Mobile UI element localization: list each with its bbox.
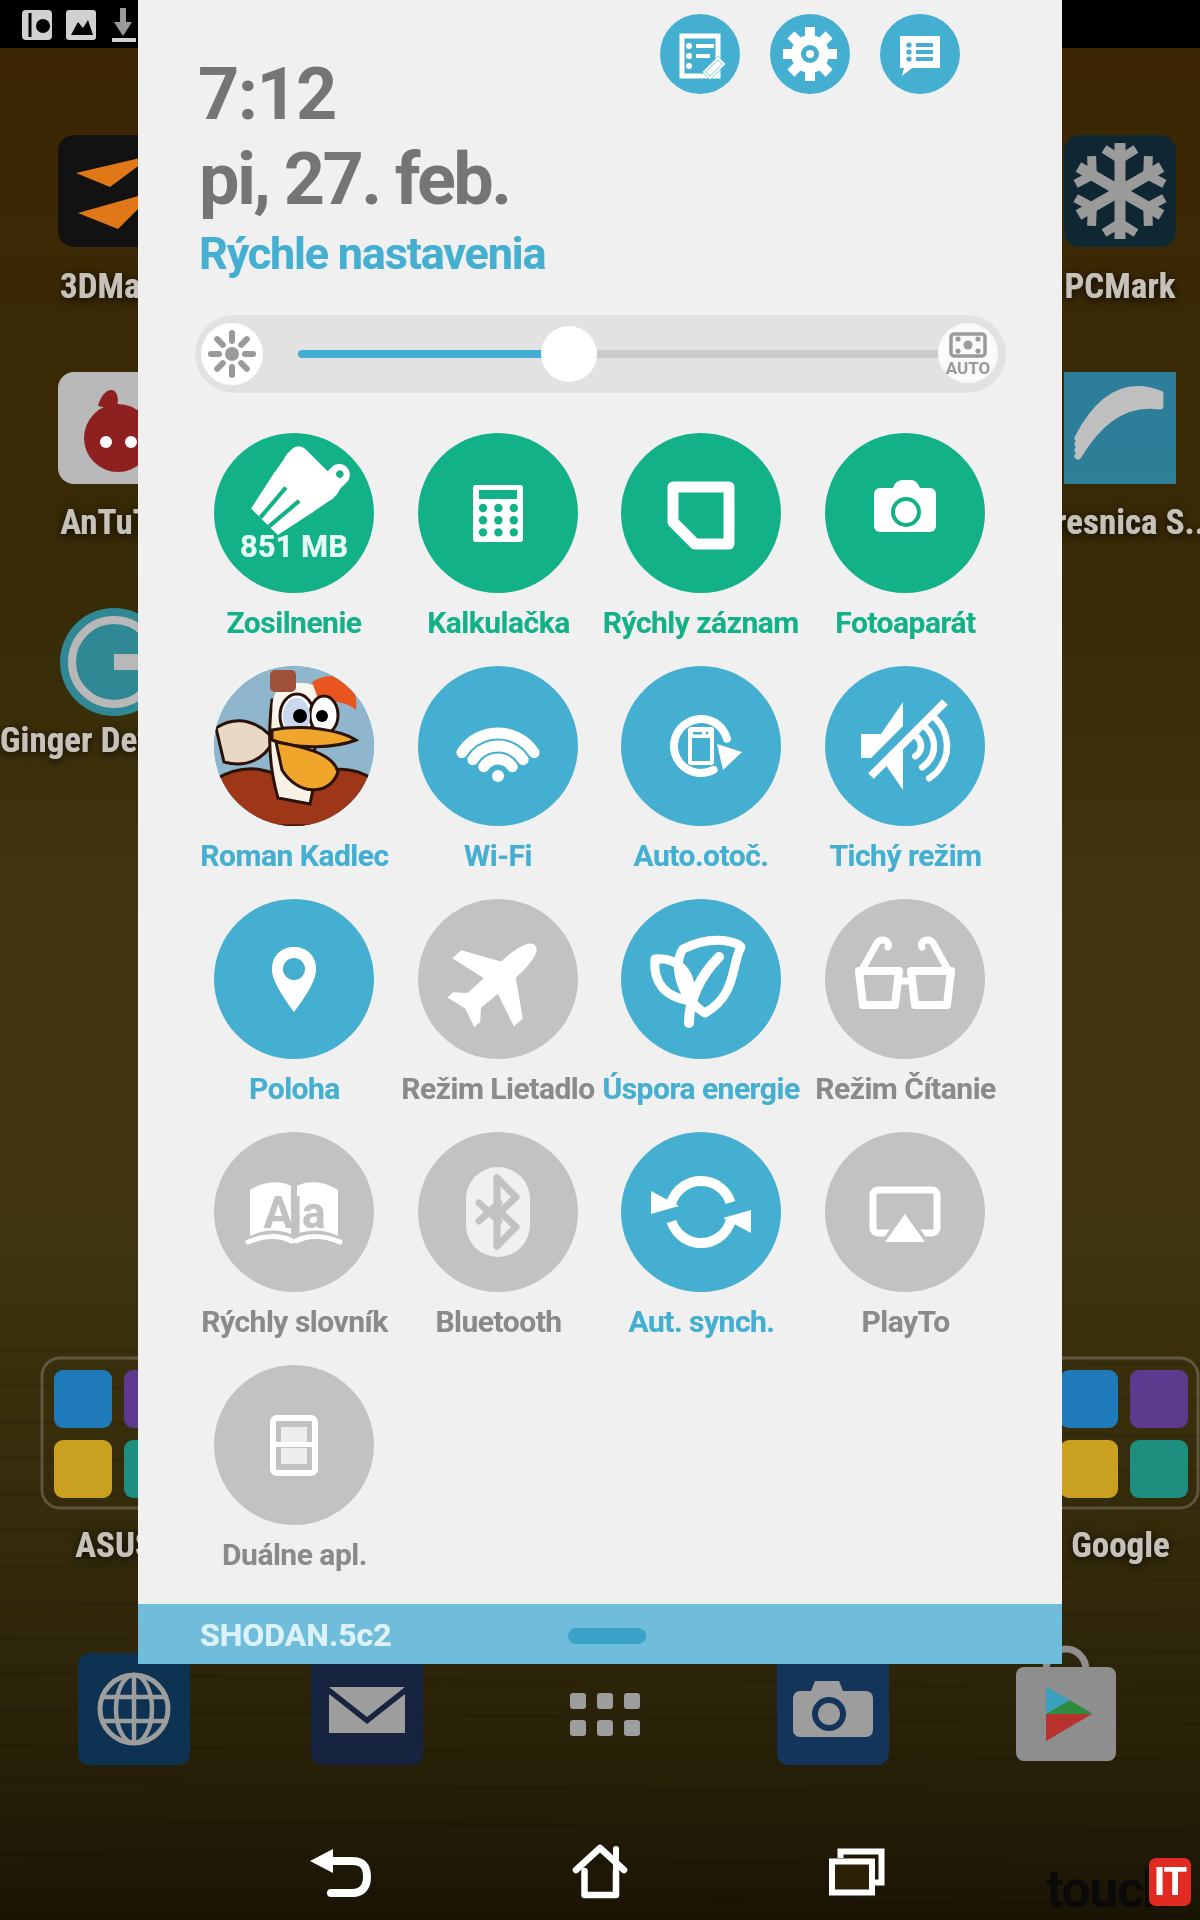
- staticText: Aut. synch.: [628, 1304, 775, 1339]
- staticText: Rýchly slovník: [201, 1304, 388, 1339]
- staticText: touch: [1046, 1859, 1171, 1920]
- button[interactable]: Recent apps: [826, 1845, 890, 1901]
- staticText: AUTO: [943, 358, 993, 378]
- staticText: Tichý režim: [829, 838, 982, 873]
- staticText: AnTuTu: [60, 502, 168, 543]
- button[interactable]: A|a: [193, 1128, 395, 1355]
- staticText: Bluetooth: [435, 1304, 562, 1339]
- button[interactable]: Rýchle nastavenia: [199, 227, 546, 280]
- button[interactable]: [397, 1128, 599, 1355]
- staticText: Rýchle nastavenia: [199, 227, 546, 280]
- button[interactable]: [600, 1128, 802, 1355]
- staticText: Kalkulačka: [427, 605, 570, 640]
- button[interactable]: Edit quick settings: [660, 14, 740, 94]
- staticText: ASUS: [75, 1525, 154, 1566]
- staticText: pi, 27. feb.: [199, 137, 510, 221]
- staticText: PCMark: [1064, 266, 1176, 307]
- staticText: 3DMark: [60, 266, 169, 307]
- staticText: Poloha: [249, 1071, 340, 1106]
- staticText: Rýchly záznam: [603, 605, 799, 640]
- button[interactable]: [193, 895, 395, 1122]
- staticText: A|a: [214, 1187, 374, 1239]
- staticText: Ginger Defender: [0, 720, 228, 761]
- button[interactable]: [600, 429, 802, 656]
- staticText: Duálne apl.: [222, 1537, 367, 1572]
- staticText: Auto.otoč.: [633, 838, 769, 873]
- staticText: Presnica S..: [1035, 502, 1200, 543]
- button[interactable]: [804, 429, 1006, 656]
- staticText: 7:12: [198, 52, 336, 136]
- button[interactable]: [397, 895, 599, 1122]
- button[interactable]: [397, 662, 599, 889]
- staticText: Režim Lietadlo: [401, 1071, 595, 1106]
- staticText: Úspora energie: [602, 1071, 800, 1106]
- button[interactable]: [193, 662, 395, 889]
- staticText: Roman Kadlec: [200, 838, 389, 873]
- button[interactable]: [397, 429, 599, 656]
- button[interactable]: Notifications: [880, 14, 960, 94]
- staticText: Google: [1071, 1525, 1170, 1566]
- button[interactable]: [600, 662, 802, 889]
- staticText: Režim Čítanie: [815, 1071, 996, 1106]
- staticText: Fotoaparát: [835, 605, 976, 640]
- staticText: 851 MB: [214, 528, 374, 564]
- button[interactable]: [193, 1361, 395, 1588]
- button[interactable]: [804, 895, 1006, 1122]
- button[interactable]: [600, 895, 802, 1122]
- staticText: PlayTo: [861, 1304, 950, 1339]
- button[interactable]: SHODAN.5c2: [138, 1604, 1062, 1664]
- button[interactable]: Settings: [770, 14, 850, 94]
- button[interactable]: [804, 1128, 1006, 1355]
- staticText: Wi-Fi: [464, 838, 532, 873]
- staticText: IT: [1154, 1860, 1187, 1905]
- button[interactable]: Home: [568, 1840, 632, 1910]
- staticText: SHODAN.5c2: [200, 1616, 392, 1654]
- button[interactable]: Back: [300, 1840, 390, 1910]
- staticText: Zosilnenie: [226, 605, 362, 640]
- button[interactable]: 851 MB: [193, 429, 395, 656]
- button[interactable]: [804, 662, 1006, 889]
